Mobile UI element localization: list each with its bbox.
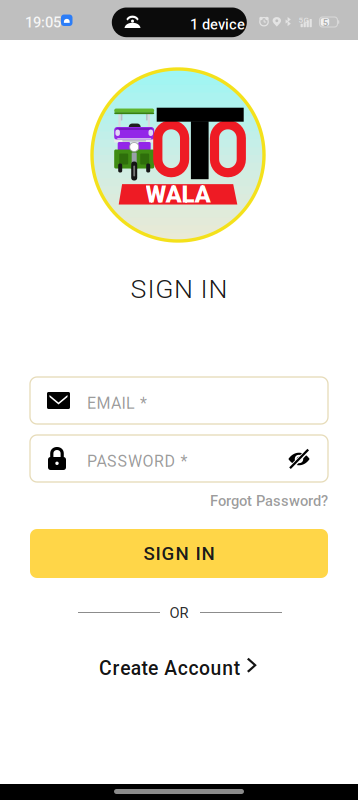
- staticText: SIGN IN: [131, 273, 227, 305]
- staticText: OR: [169, 604, 188, 622]
- staticText: SIGN IN: [143, 543, 214, 564]
- staticText: 19:05: [25, 14, 61, 31]
- button[interactable]: Show password: [288, 449, 310, 469]
- staticText: 5: [323, 17, 328, 28]
- staticText: 5G: [298, 15, 308, 25]
- staticText: 1 device: [190, 16, 245, 33]
- button[interactable]: EMAIL *: [30, 377, 328, 424]
- staticText: EMAIL *: [87, 394, 147, 413]
- staticText: Forgot Password?: [210, 492, 328, 510]
- button[interactable]: Forgot Password?: [198, 492, 328, 510]
- staticText: Create Account: [99, 657, 240, 680]
- button[interactable]: Create Account: [99, 655, 279, 677]
- staticText: WALA: [145, 180, 210, 208]
- button[interactable]: SIGN IN: [30, 529, 328, 578]
- staticText: PASSWORD *: [87, 452, 187, 471]
